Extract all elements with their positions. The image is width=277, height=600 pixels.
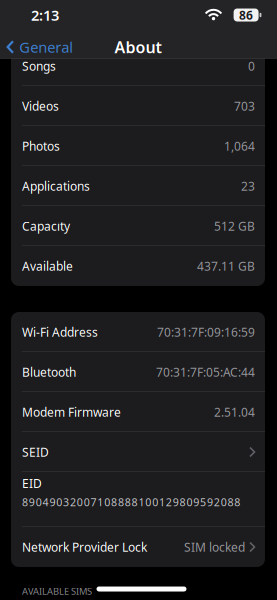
staticText: Videos <box>22 98 59 114</box>
staticText: Capacity <box>22 218 70 234</box>
staticText: 0 <box>248 58 255 74</box>
staticText: Available <box>22 258 73 274</box>
staticText: Songs <box>22 58 56 74</box>
button[interactable]: Back to General <box>7 37 73 57</box>
staticText: 703 <box>234 98 255 114</box>
staticText: AVAILABLE SIMS <box>22 585 92 597</box>
staticText: 1,064 <box>224 138 255 154</box>
staticText: Wi-Fi Address <box>22 324 98 340</box>
staticText: 437.11 GB <box>197 258 255 274</box>
staticText: General <box>19 37 73 57</box>
staticText: Photos <box>22 138 60 154</box>
staticText: Modem Firmware <box>22 404 121 420</box>
staticText: Bluetooth <box>22 364 76 380</box>
staticText: 512 GB <box>214 218 255 234</box>
button[interactable]: Network Provider Lock <box>11 527 265 567</box>
staticText: EID <box>22 475 42 491</box>
staticText: About <box>114 36 161 58</box>
staticText: 2.51.04 <box>214 404 255 420</box>
staticText: 2:13 <box>31 5 59 25</box>
staticText: Applications <box>22 178 90 194</box>
staticText: SIM locked <box>184 539 245 555</box>
staticText: SEID <box>22 444 49 460</box>
staticText: 86 <box>239 7 253 23</box>
staticText: Network Provider Lock <box>22 539 147 555</box>
staticText: 70:31:7F:05:AC:44 <box>156 364 255 380</box>
staticText: 23 <box>241 178 255 194</box>
button[interactable]: SEID <box>11 432 265 472</box>
staticText: 70:31:7F:09:16:59 <box>157 324 255 340</box>
staticText: 89049032007108888100129809592088 <box>22 495 240 509</box>
